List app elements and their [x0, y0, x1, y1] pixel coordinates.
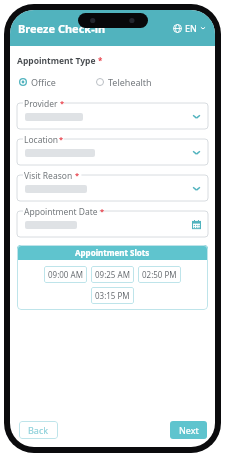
- staticText: Breeze Check-in: [18, 21, 106, 36]
- button[interactable]: Back: [19, 421, 58, 439]
- button[interactable]: Visit Reason: [17, 170, 208, 201]
- button[interactable]: Office: [17, 74, 58, 90]
- staticText: *: [98, 55, 103, 66]
- staticText: 03:15 PM: [95, 290, 130, 301]
- staticText: Visit Reason: [24, 170, 73, 182]
- staticText: *: [100, 206, 105, 216]
- button[interactable]: Provider: [17, 98, 208, 129]
- staticText: Back: [28, 424, 49, 436]
- staticText: Location: [24, 134, 59, 146]
- staticText: Office: [31, 76, 56, 88]
- staticText: Telehealth: [108, 76, 152, 88]
- staticText: *: [60, 98, 65, 108]
- button[interactable]: Change language: [171, 20, 208, 36]
- staticText: Next: [179, 424, 199, 436]
- staticText: 09:25 AM: [95, 269, 130, 280]
- staticText: EN: [185, 22, 197, 34]
- staticText: *: [59, 134, 64, 144]
- button[interactable]: Location: [17, 134, 208, 165]
- staticText: Appointment Date: [24, 206, 98, 218]
- button[interactable]: 02:50 PM: [138, 266, 181, 283]
- staticText: Provider: [24, 98, 58, 110]
- button[interactable]: 09:00 AM: [44, 266, 87, 283]
- button[interactable]: 03:15 PM: [91, 287, 134, 304]
- button[interactable]: Next: [170, 421, 207, 439]
- staticText: *: [75, 170, 80, 180]
- button[interactable]: Telehealth: [94, 74, 154, 90]
- staticText: 02:50 PM: [142, 269, 177, 280]
- button[interactable]: 09:25 AM: [91, 266, 134, 283]
- staticText: 09:00 AM: [48, 269, 83, 280]
- button[interactable]: Appointment Date: [17, 206, 208, 237]
- staticText: Appointment Slots: [75, 247, 150, 258]
- staticText: Appointment Type: [17, 55, 96, 67]
